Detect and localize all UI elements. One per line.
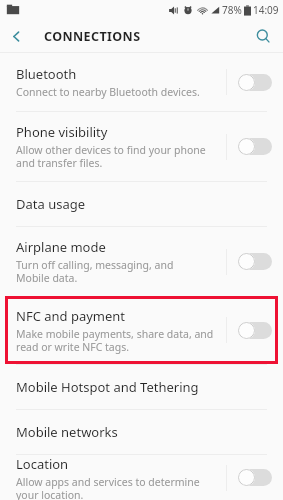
staticText: Airplane mode [16,238,106,256]
button[interactable]: Data usage [0,182,283,226]
button[interactable]: Mobile Hotspot and Tethering [0,365,283,409]
staticText: Bluetooth [16,65,77,83]
button[interactable]: Phone visibility [0,112,283,181]
button[interactable]: NFC and payment toggle [227,296,283,364]
staticText: 78% [222,3,242,17]
button[interactable]: Bluetooth toggle [227,53,283,111]
staticText: Turn off calling, messaging, and Mobile … [16,258,174,285]
button[interactable]: Airplane mode [0,227,283,296]
staticText: Data usage [16,195,86,213]
button[interactable]: Phone visibility toggle [227,112,283,181]
staticText: NFC and payment [16,307,126,325]
staticText: Connect to nearby Bluetooth devices. [16,85,200,99]
button[interactable]: Back [0,20,32,52]
button[interactable]: Mobile networks [0,410,283,454]
staticText: Make mobile payments, share data, and re… [16,327,214,354]
button[interactable]: NFC and payment [0,296,283,364]
staticText: Phone visibility [16,123,108,141]
button[interactable]: Location [0,455,283,500]
staticText: Allow other devices to find your phone a… [16,143,206,170]
staticText: Mobile Hotspot and Tethering [16,378,199,396]
staticText: CONNECTIONS [44,28,141,45]
staticText: Allow apps and services to determine you… [16,475,200,500]
button[interactable]: Airplane mode toggle [227,227,283,296]
staticText: 14:09 [253,3,279,17]
staticText: Location [16,455,69,473]
button[interactable]: Search [247,20,279,52]
staticText: Mobile networks [16,423,118,441]
button[interactable]: Location toggle [227,455,283,500]
button[interactable]: Bluetooth [0,53,283,111]
